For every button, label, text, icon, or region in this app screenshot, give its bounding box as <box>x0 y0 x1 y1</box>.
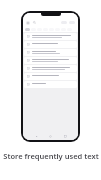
other: Note <box>27 43 30 46</box>
button[interactable]: Home <box>49 135 52 138</box>
button[interactable]: Note <box>24 73 77 80</box>
staticText: Store frequently used text <box>3 151 99 161</box>
button[interactable]: Note <box>24 41 77 48</box>
button[interactable]: Search <box>33 21 36 24</box>
button[interactable]: Back <box>35 135 38 138</box>
other: Note <box>27 59 30 62</box>
other: Note <box>27 83 30 86</box>
other: Note <box>27 75 30 78</box>
button[interactable]: All <box>25 28 30 31</box>
other: Note <box>27 35 30 38</box>
button[interactable]: Note <box>24 81 77 88</box>
other: Note <box>27 51 30 54</box>
other: Note <box>27 67 30 70</box>
button[interactable]: Add <box>61 21 67 24</box>
button[interactable]: Note <box>24 33 77 40</box>
button[interactable]: Note <box>24 65 77 72</box>
button[interactable]: Menu <box>26 21 30 25</box>
button[interactable]: Edit <box>69 21 75 24</box>
button[interactable]: Note <box>24 49 77 56</box>
button[interactable]: Recents <box>64 135 67 138</box>
button[interactable]: Note <box>24 57 77 64</box>
